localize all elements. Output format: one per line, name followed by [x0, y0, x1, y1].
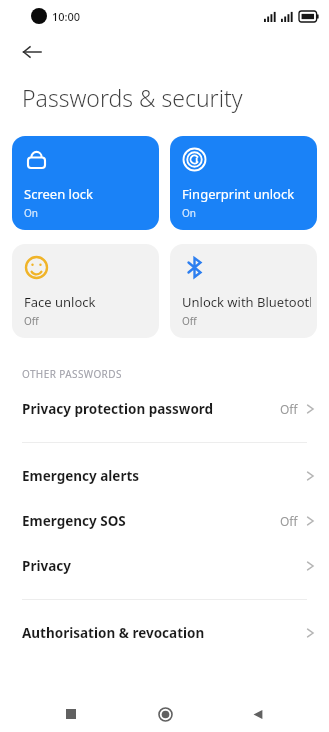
staticText: OTHER PASSWORDS [22, 367, 122, 381]
staticText: 10:00 [52, 9, 81, 24]
staticText: Off [280, 513, 298, 529]
button[interactable]: Screen lock [12, 136, 159, 230]
staticText: Passwords & security [22, 82, 243, 113]
staticText: Emergency SOS [22, 512, 280, 530]
button[interactable]: Home [143, 696, 187, 732]
button[interactable]: Authorisation & revocation [0, 610, 329, 655]
button[interactable]: Back [236, 696, 280, 732]
staticText: Privacy protection password [22, 400, 280, 418]
staticText: Unlock with Bluetooth [182, 293, 311, 311]
button[interactable]: Back [12, 34, 52, 70]
button[interactable]: Emergency alerts [0, 453, 329, 498]
button[interactable]: Face unlock [12, 244, 159, 338]
staticText: On [182, 206, 196, 220]
staticText: Face unlock [24, 293, 96, 311]
button[interactable]: Recent apps [49, 696, 93, 732]
button[interactable]: Fingerprint unlock [170, 136, 317, 230]
staticText: On [24, 206, 38, 220]
staticText: Screen lock [24, 185, 93, 203]
staticText: Privacy [22, 557, 306, 575]
staticText: Off [280, 401, 298, 417]
staticText: Fingerprint unlock [182, 185, 295, 203]
button[interactable]: Emergency SOS [0, 498, 329, 543]
button[interactable]: Unlock with Bluetooth [170, 244, 317, 338]
staticText: Off [24, 314, 39, 328]
button[interactable]: Privacy [0, 543, 329, 588]
staticText: Emergency alerts [22, 467, 306, 485]
staticText: Off [182, 314, 197, 328]
staticText: Authorisation & revocation [22, 624, 306, 642]
button[interactable]: Privacy protection password [0, 386, 329, 431]
